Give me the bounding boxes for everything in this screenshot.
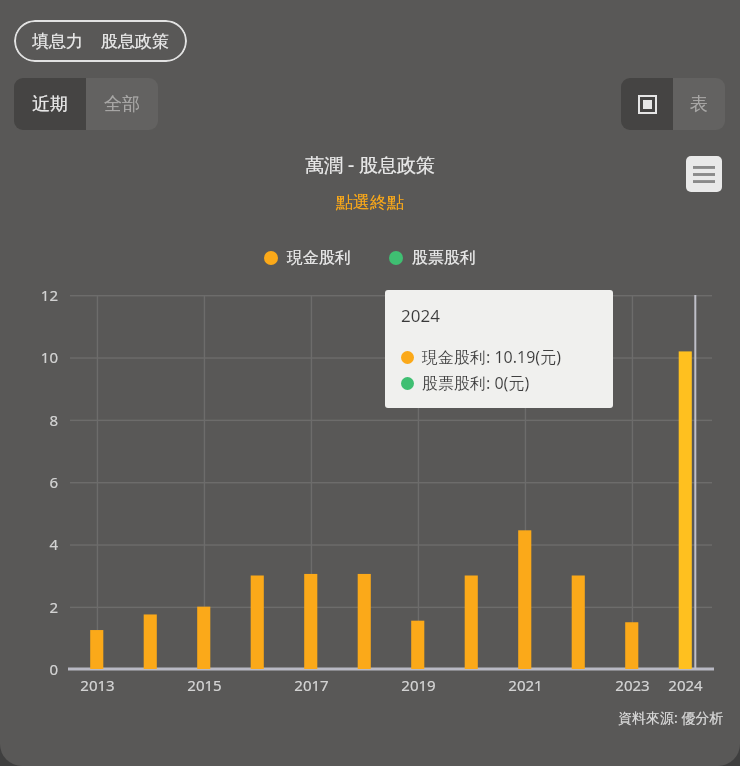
staticText: 現金股利: 10.19(元) — [422, 346, 561, 368]
button[interactable]: 全部 — [86, 78, 158, 130]
staticText: 12 — [40, 285, 58, 305]
button[interactable]: 股息政策 — [92, 20, 187, 62]
staticText: 全部 — [104, 93, 140, 116]
staticText: 近期 — [32, 93, 68, 116]
staticText: 資料來源: 優分析 — [618, 708, 724, 727]
staticText: 股票股利: 0(元) — [422, 372, 530, 394]
staticText: 2024 — [668, 675, 703, 695]
staticText: 4 — [49, 534, 58, 554]
staticText: 2 — [49, 597, 58, 617]
staticText: 現金股利 — [287, 248, 351, 268]
button[interactable]: 現金股利 — [264, 248, 351, 268]
staticText: 2021 — [508, 675, 543, 695]
staticText: 10 — [40, 347, 58, 367]
staticText: 點選終點 — [336, 192, 404, 213]
staticText: 2015 — [187, 675, 222, 695]
staticText: 表 — [690, 93, 708, 116]
staticText: 2017 — [294, 675, 329, 695]
staticText: 6 — [49, 472, 58, 492]
staticText: 股息政策 — [101, 31, 169, 52]
staticText: 填息力 — [32, 31, 83, 52]
staticText: 股票股利 — [412, 248, 476, 268]
staticText: 0 — [49, 659, 58, 679]
button[interactable]: 填息力 — [14, 20, 92, 62]
button[interactable]: 表 — [673, 78, 725, 130]
button[interactable] — [621, 78, 673, 130]
staticText: 2013 — [80, 675, 115, 695]
button[interactable]: 近期 — [14, 78, 86, 130]
staticText: 2019 — [401, 675, 436, 695]
button[interactable]: 股票股利 — [389, 248, 476, 268]
staticText: 8 — [49, 410, 58, 430]
staticText: 2023 — [615, 675, 650, 695]
button[interactable]: Chart menu — [686, 156, 722, 192]
staticText: 2024 — [401, 304, 440, 327]
staticText: 萬潤 - 股息政策 — [305, 152, 435, 178]
